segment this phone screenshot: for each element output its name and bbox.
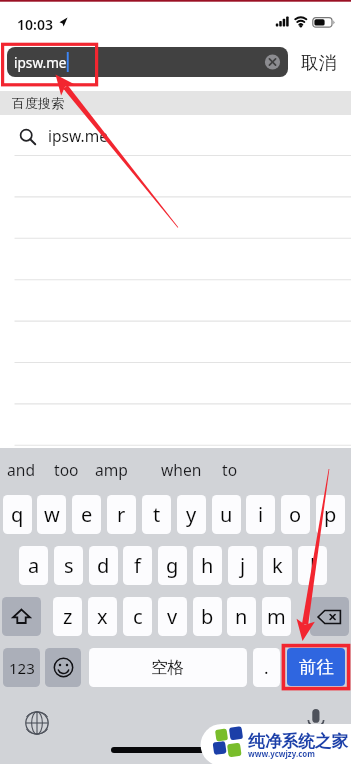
button[interactable] bbox=[0, 156, 351, 197]
button[interactable] bbox=[0, 279, 351, 320]
button[interactable]: z bbox=[53, 597, 82, 636]
staticText: j bbox=[240, 552, 246, 579]
staticText: 10:03 bbox=[17, 15, 53, 34]
staticText: ipsw.me bbox=[14, 53, 67, 72]
staticText: s bbox=[64, 552, 74, 579]
staticText: and bbox=[7, 459, 35, 480]
button[interactable]: i bbox=[246, 495, 275, 534]
staticText: 前往 bbox=[299, 656, 334, 678]
staticText: v bbox=[167, 603, 178, 630]
button[interactable]: Change keyboard bbox=[25, 711, 49, 735]
staticText: o bbox=[289, 501, 302, 528]
button[interactable]: u bbox=[212, 495, 241, 534]
staticText: too bbox=[54, 459, 79, 480]
staticText: to bbox=[222, 459, 238, 480]
button[interactable]: q bbox=[3, 495, 32, 534]
staticText: e bbox=[81, 501, 93, 528]
staticText: . bbox=[264, 656, 269, 679]
button[interactable]: 取消 bbox=[301, 52, 337, 74]
button[interactable]: o bbox=[281, 495, 310, 534]
staticText: b bbox=[201, 603, 214, 630]
staticText: y bbox=[186, 501, 197, 528]
staticText: t bbox=[153, 501, 161, 528]
button[interactable] bbox=[0, 238, 351, 279]
button[interactable]: 前往 bbox=[287, 648, 345, 686]
button[interactable]: Dictation bbox=[304, 707, 328, 731]
button[interactable]: Backspace bbox=[310, 597, 349, 636]
button[interactable]: a bbox=[19, 546, 48, 585]
staticText: m bbox=[267, 603, 286, 630]
button[interactable]: k bbox=[263, 546, 292, 585]
staticText: h bbox=[201, 552, 214, 579]
staticText: x bbox=[97, 603, 108, 630]
staticText: ipsw.me bbox=[48, 125, 108, 146]
button[interactable]: b bbox=[193, 597, 222, 636]
button[interactable]: ipsw.me bbox=[0, 115, 351, 156]
staticText: l bbox=[310, 552, 316, 579]
staticText: d bbox=[97, 552, 110, 579]
button[interactable]: r bbox=[107, 495, 136, 534]
staticText: k bbox=[272, 552, 283, 579]
button[interactable]: j bbox=[228, 546, 257, 585]
staticText: r bbox=[117, 501, 126, 528]
button[interactable]: y bbox=[177, 495, 206, 534]
button[interactable]: f bbox=[123, 546, 152, 585]
button[interactable]: too bbox=[45, 449, 87, 490]
staticText: 123 bbox=[9, 658, 35, 678]
staticText: 百度搜索 bbox=[12, 95, 64, 111]
button[interactable]: amp bbox=[89, 449, 133, 490]
button[interactable]: x bbox=[88, 597, 117, 636]
button[interactable]: and bbox=[0, 449, 44, 490]
staticText: n bbox=[235, 603, 248, 630]
staticText: w bbox=[44, 501, 60, 528]
button[interactable]: when bbox=[150, 449, 213, 490]
button[interactable] bbox=[0, 320, 351, 361]
staticText: z bbox=[63, 603, 73, 630]
button[interactable]: c bbox=[123, 597, 152, 636]
button[interactable]: d bbox=[89, 546, 118, 585]
staticText: g bbox=[166, 552, 179, 579]
button[interactable] bbox=[0, 402, 351, 443]
button[interactable]: e bbox=[72, 495, 101, 534]
button[interactable]: g bbox=[158, 546, 187, 585]
button[interactable]: w bbox=[37, 495, 66, 534]
button[interactable]: s bbox=[54, 546, 83, 585]
staticText: c bbox=[133, 603, 143, 630]
staticText: p bbox=[324, 501, 337, 528]
button[interactable]: p bbox=[316, 495, 345, 534]
button[interactable]: h bbox=[193, 546, 222, 585]
button[interactable]: 空格 bbox=[89, 648, 247, 687]
button[interactable] bbox=[0, 197, 351, 238]
staticText: u bbox=[220, 501, 233, 528]
staticText: when bbox=[161, 459, 202, 480]
button[interactable]: m bbox=[262, 597, 291, 636]
staticText: 空格 bbox=[151, 657, 185, 678]
staticText: 纯净系统之家 bbox=[248, 731, 349, 752]
button[interactable]: l bbox=[298, 546, 327, 585]
button[interactable]: Emoji bbox=[45, 648, 81, 687]
button[interactable]: ipsw.me bbox=[7, 47, 288, 77]
staticText: a bbox=[28, 552, 40, 579]
staticText: i bbox=[258, 501, 264, 528]
button[interactable]: . bbox=[253, 648, 280, 687]
button[interactable]: t bbox=[142, 495, 171, 534]
staticText: q bbox=[11, 501, 24, 528]
button[interactable]: 123 bbox=[3, 648, 40, 687]
button[interactable]: v bbox=[158, 597, 187, 636]
staticText: 取消 bbox=[301, 52, 337, 74]
button[interactable]: Shift bbox=[2, 597, 41, 636]
button[interactable]: to bbox=[211, 449, 249, 490]
button[interactable]: n bbox=[227, 597, 256, 636]
staticText: f bbox=[134, 552, 141, 579]
button[interactable] bbox=[0, 361, 351, 402]
staticText: www.ycwjzy.com bbox=[248, 749, 315, 760]
staticText: amp bbox=[95, 459, 128, 480]
